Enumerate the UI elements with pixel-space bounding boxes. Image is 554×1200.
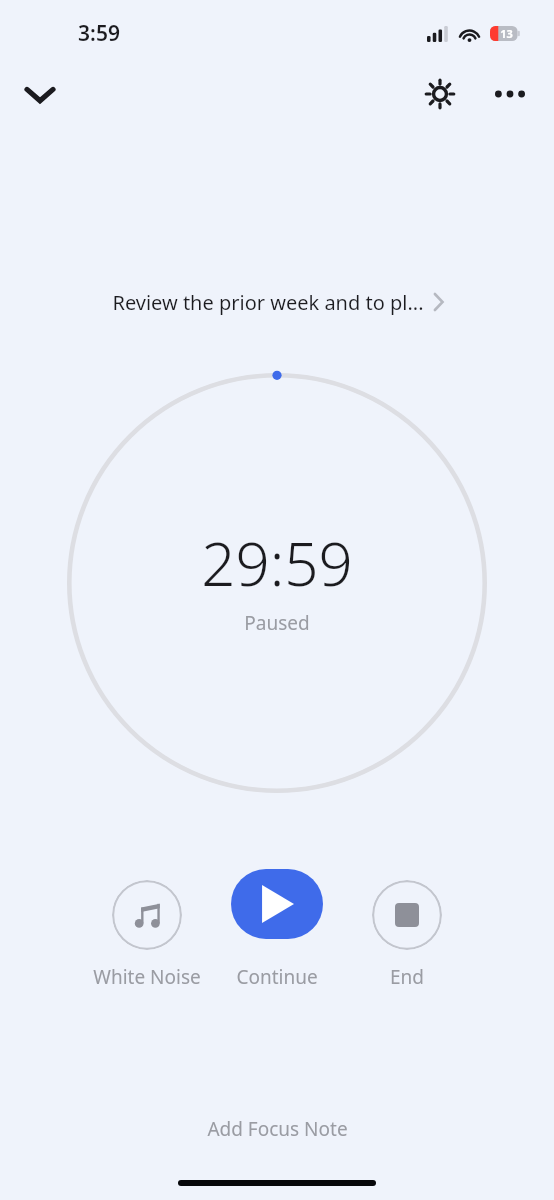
button[interactable]: Continue [217,880,337,990]
button[interactable]: White Noise [77,880,217,990]
staticText: White Noise [93,964,201,990]
button[interactable]: Collapse [14,68,66,120]
button[interactable]: Review the prior week and to pl... [0,283,554,321]
button[interactable]: More options [484,68,536,120]
staticText: End [390,964,424,990]
staticText: 13 [500,26,513,41]
button[interactable]: Add Focus Note [183,1108,372,1150]
button[interactable]: End [337,880,477,990]
staticText: Add Focus Note [207,1116,348,1142]
staticText: Paused [244,610,310,636]
staticText: Continue [236,964,318,990]
staticText: 29:59 [201,522,353,604]
staticText: Review the prior week and to pl... [112,289,424,316]
button[interactable]: Brightness [414,68,466,120]
staticText: 3:59 [78,19,120,48]
